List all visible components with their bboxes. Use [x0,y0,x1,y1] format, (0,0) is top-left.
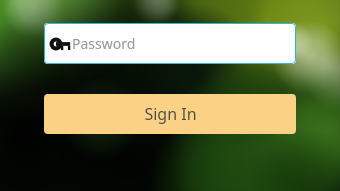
button[interactable]: Sign In [44,94,296,134]
staticText: Sign In [144,103,197,125]
staticText: Password [72,34,136,53]
button[interactable]: Password [44,23,296,64]
